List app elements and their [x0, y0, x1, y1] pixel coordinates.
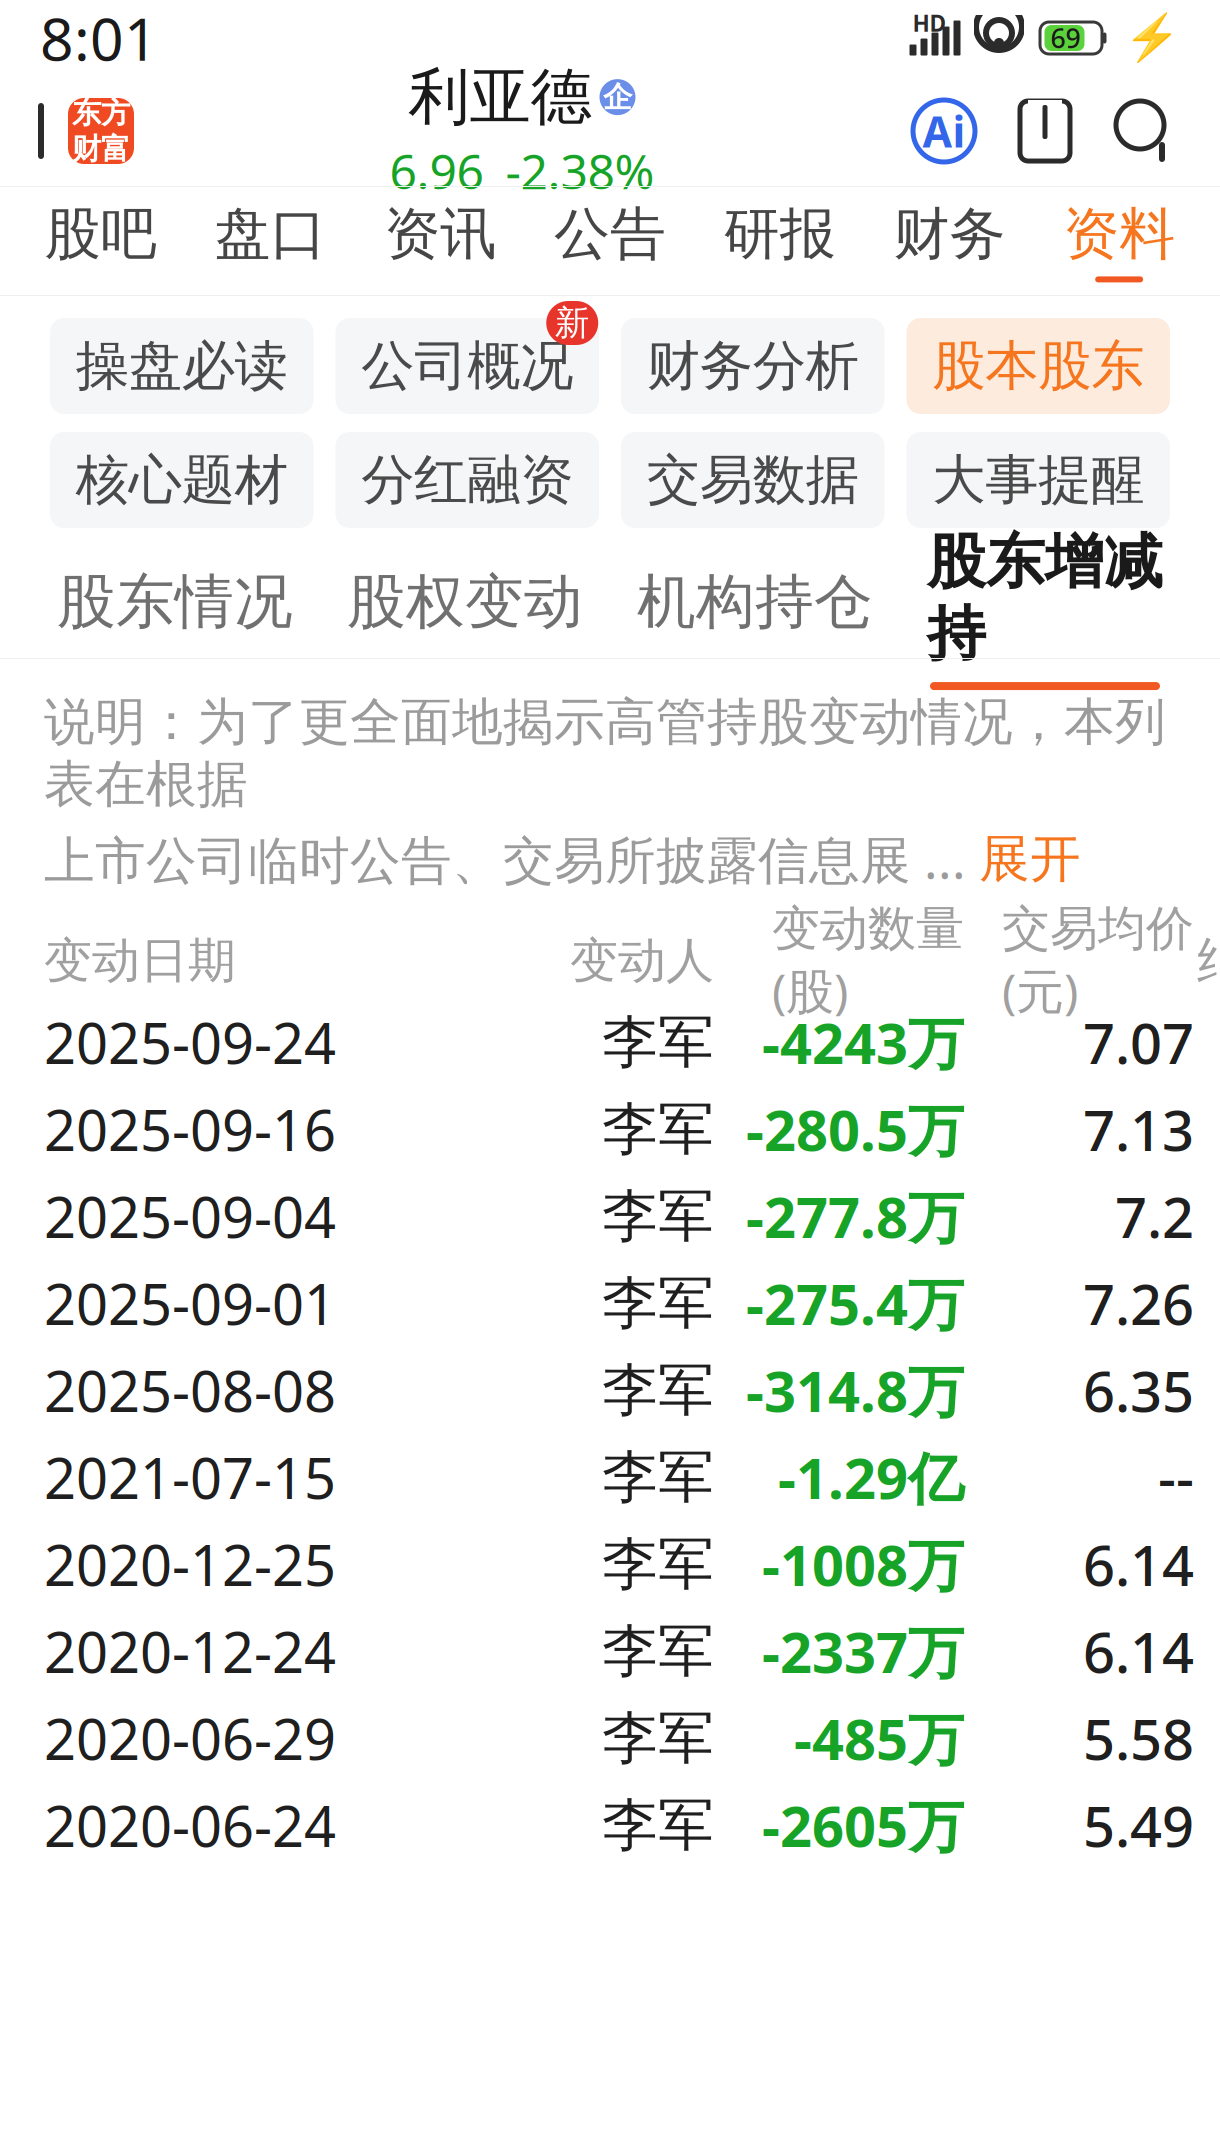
staticText: 李军	[602, 1443, 714, 1512]
staticText: -2605万	[762, 1788, 964, 1862]
button[interactable]: 2025-09-24	[0, 999, 1220, 1086]
staticText: 资讯	[384, 200, 496, 268]
staticText: 7.26	[1083, 1266, 1194, 1340]
staticText: 李军	[602, 1095, 714, 1164]
staticText: 大事提醒	[932, 447, 1144, 513]
staticText: 2025-09-04	[44, 1179, 336, 1253]
button[interactable]: 2021-07-15	[0, 1434, 1220, 1521]
staticText: 2025-09-01	[44, 1266, 336, 1340]
staticText: 李军	[602, 1617, 714, 1686]
staticText: -2337万	[762, 1614, 964, 1688]
staticText: 研报	[724, 200, 836, 268]
button[interactable]: 公司概况	[335, 318, 599, 414]
staticText: 2020-06-29	[44, 1701, 336, 1775]
button[interactable]: 2025-09-16	[0, 1086, 1220, 1173]
staticText: 李军	[602, 1008, 714, 1077]
staticText: 7.2	[1115, 1179, 1194, 1253]
staticText: 股权变动	[347, 566, 583, 638]
button[interactable]: 展开	[979, 828, 1081, 890]
button[interactable]: 2020-06-29	[0, 1695, 1220, 1782]
staticText: -2.38%	[505, 139, 654, 202]
staticText: 东方	[72, 95, 130, 131]
button[interactable]: 股东增减持	[900, 546, 1190, 658]
staticText: 5.49	[1083, 1788, 1194, 1862]
staticText: 2025-09-16	[44, 1092, 336, 1166]
staticText: 6.35	[1083, 1353, 1194, 1427]
button[interactable]: 大事提醒	[906, 432, 1170, 528]
staticText: -485万	[794, 1701, 964, 1775]
button[interactable]: 财务分析	[621, 318, 884, 414]
staticText: 6.14	[1083, 1614, 1194, 1688]
button[interactable]: 公告	[525, 187, 695, 295]
staticText: 交易均价(元)	[1002, 899, 1194, 1022]
button[interactable]: 盘口	[186, 187, 355, 295]
staticText: 企	[603, 79, 632, 115]
staticText: 5.58	[1083, 1701, 1194, 1775]
button[interactable]: 2025-08-08	[0, 1347, 1220, 1434]
staticText: HD	[912, 8, 946, 38]
button[interactable]: 股吧	[16, 187, 186, 295]
staticText: 2025-09-24	[44, 1005, 336, 1079]
button[interactable]: 2020-12-25	[0, 1521, 1220, 1608]
button[interactable]: 股东情况	[30, 546, 320, 658]
button[interactable]: 核心题材	[50, 432, 313, 528]
staticText: 6.14	[1083, 1527, 1194, 1601]
button[interactable]: 2020-06-24	[0, 1782, 1220, 1869]
staticText: 股吧	[45, 200, 157, 268]
staticText: Ai	[922, 103, 965, 159]
button[interactable]: AI 助手	[910, 97, 978, 165]
staticText: 财务	[893, 200, 1005, 268]
button[interactable]: 操盘必读	[50, 318, 313, 414]
staticText: 股东增减持	[927, 526, 1163, 670]
staticText: 2021-07-15	[44, 1440, 336, 1514]
staticText: 变动日期	[44, 931, 236, 990]
staticText: 公告	[554, 200, 666, 268]
button[interactable]: 分红融资	[335, 432, 599, 528]
staticText: 核心题材	[76, 447, 288, 513]
button[interactable]: 研报	[695, 187, 865, 295]
staticText: 上市公司临时公告、交易所披露信息展 ...	[44, 825, 979, 893]
button[interactable]: 搜索	[1112, 96, 1178, 166]
staticText: 纟	[1194, 931, 1220, 990]
staticText: -314.8万	[746, 1353, 964, 1427]
staticText: 资料	[1063, 200, 1175, 268]
staticText: 李军	[602, 1269, 714, 1338]
staticText: 财富	[72, 131, 130, 167]
staticText: -277.8万	[746, 1179, 964, 1253]
staticText: 李军	[602, 1704, 714, 1773]
button[interactable]: 返回	[0, 76, 134, 186]
staticText: 说明：为了更全面地揭示高管持股变动情况，本列表在根据	[44, 691, 1166, 815]
button[interactable]: 股权变动	[320, 546, 610, 658]
staticText: 公司概况	[361, 333, 573, 399]
staticText: ⚡	[1124, 12, 1180, 64]
button[interactable]: 交易数据	[621, 432, 884, 528]
staticText: 机构持仓	[637, 566, 873, 638]
staticText: 股东情况	[57, 566, 293, 638]
staticText: 李军	[602, 1356, 714, 1425]
button[interactable]: 股本股东	[906, 318, 1170, 414]
staticText: 2020-12-25	[44, 1527, 336, 1601]
staticText: 分红融资	[361, 447, 573, 513]
button[interactable]: 2025-09-04	[0, 1173, 1220, 1260]
staticText: --	[1158, 1440, 1194, 1514]
staticText: 6.96	[389, 139, 483, 202]
staticText: -4243万	[762, 1005, 964, 1079]
button[interactable]: 财务	[865, 187, 1034, 295]
button[interactable]: 2020-12-24	[0, 1608, 1220, 1695]
button[interactable]: 资料	[1034, 187, 1204, 295]
button[interactable]: 机构持仓	[610, 546, 900, 658]
staticText: 交易数据	[647, 447, 859, 513]
staticText: 2025-08-08	[44, 1353, 336, 1427]
staticText: -1008万	[762, 1527, 964, 1601]
button[interactable]: 分享	[1014, 96, 1076, 166]
staticText: 2020-06-24	[44, 1788, 336, 1862]
staticText: 李军	[602, 1791, 714, 1860]
staticText: 财务分析	[647, 333, 859, 399]
staticText: -1.29亿	[778, 1440, 964, 1514]
button[interactable]: 资讯	[355, 187, 525, 295]
staticText: 利亚德	[408, 59, 591, 135]
staticText: 变动数量(股)	[772, 899, 964, 1022]
staticText: 变动人	[570, 931, 714, 990]
button[interactable]: 2025-09-01	[0, 1260, 1220, 1347]
staticText: 69	[1050, 20, 1080, 56]
